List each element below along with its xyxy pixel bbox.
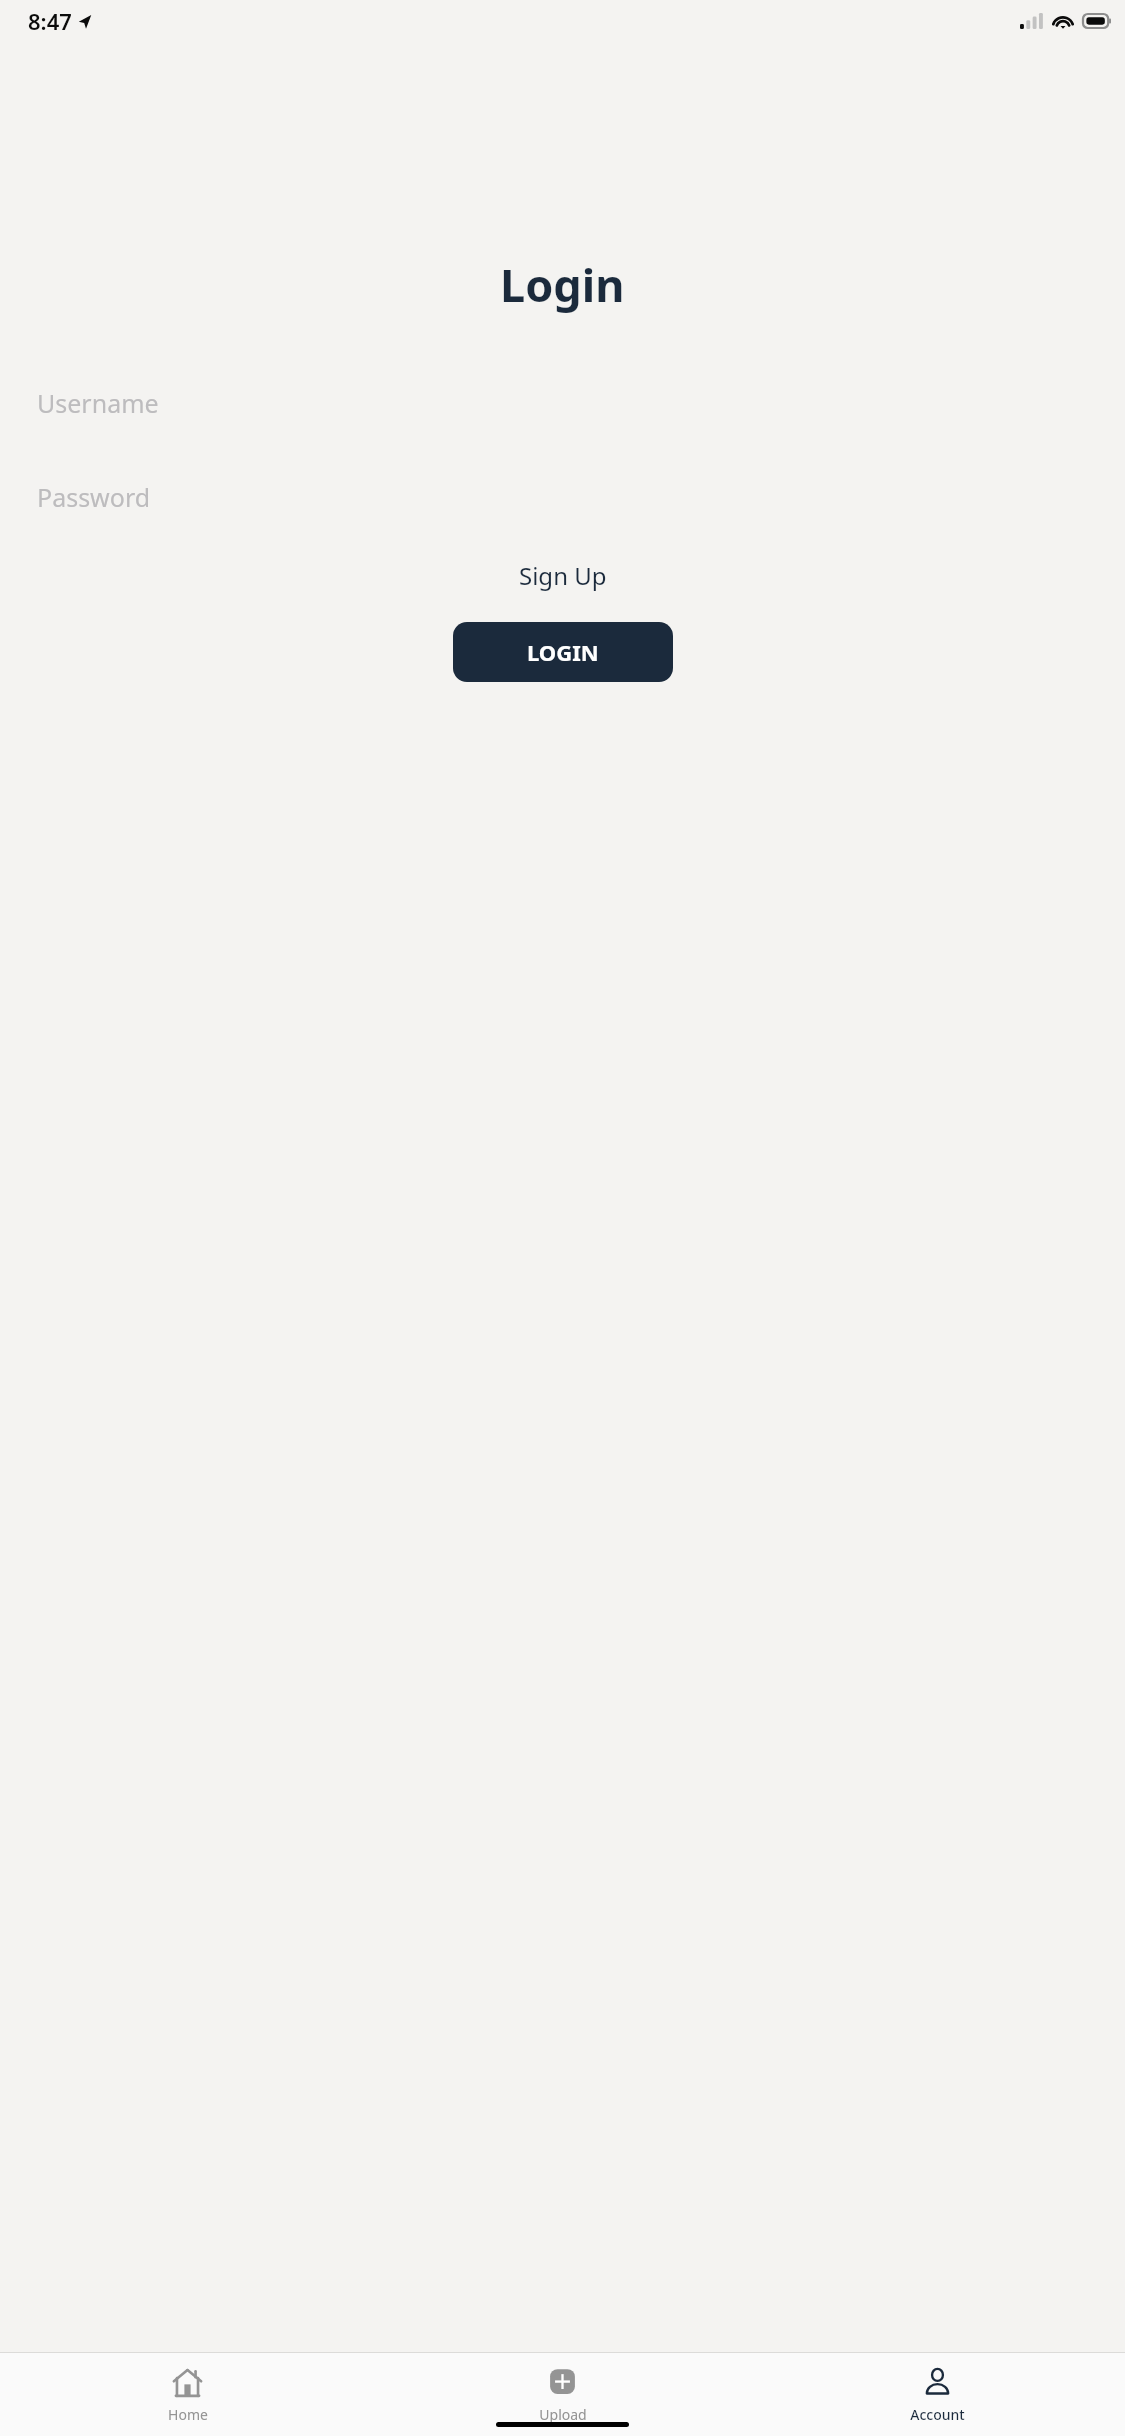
staticText: 8:47 [28, 6, 72, 36]
staticText: Account [910, 2405, 965, 2424]
staticText: Upload [539, 2405, 587, 2424]
staticText: Password [37, 480, 151, 514]
button[interactable]: Password [0, 461, 1125, 533]
staticText: Home [168, 2405, 208, 2424]
staticText: Sign Up [519, 559, 607, 592]
button[interactable]: Account [750, 2353, 1125, 2424]
button[interactable]: Sign Up [503, 551, 623, 600]
staticText: LOGIN [527, 637, 599, 667]
button[interactable]: Username [0, 367, 1125, 439]
staticText: Login [500, 254, 625, 315]
other: Account [922, 2367, 953, 2398]
button[interactable]: LOGIN [453, 622, 673, 682]
staticText: Username [37, 386, 159, 420]
other: Home [172, 2367, 203, 2398]
other: Upload [547, 2367, 578, 2398]
button[interactable]: Home [0, 2353, 375, 2424]
button[interactable]: Upload [375, 2353, 750, 2424]
